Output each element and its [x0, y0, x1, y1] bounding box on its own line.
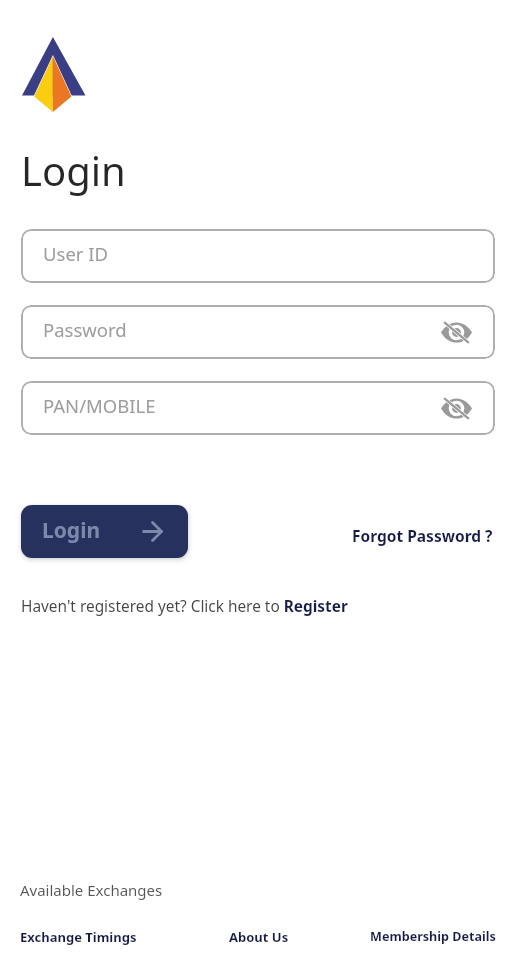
button[interactable]: Password: [21, 305, 495, 359]
staticText: Forgot Password ?: [352, 525, 493, 546]
button[interactable]: Toggle password visibility: [439, 315, 473, 349]
button[interactable]: Exchange Timings: [20, 928, 137, 946]
staticText: Login: [21, 143, 126, 197]
button[interactable]: About Us: [229, 928, 289, 946]
button[interactable]: Haven't registered yet? Click here to Re…: [21, 596, 348, 617]
staticText: Password: [43, 317, 127, 342]
staticText: PAN/MOBILE: [43, 393, 156, 418]
button[interactable]: Membership Details: [370, 928, 496, 945]
button[interactable]: Toggle password visibility: [439, 391, 473, 425]
staticText: Available Exchanges: [20, 880, 163, 900]
button[interactable]: Login: [21, 505, 188, 558]
button[interactable]: User ID: [21, 229, 495, 283]
staticText: User ID: [43, 241, 109, 266]
staticText: Login: [42, 516, 101, 545]
button[interactable]: Forgot Password ?: [342, 517, 502, 551]
button[interactable]: PAN/MOBILE: [21, 381, 495, 435]
